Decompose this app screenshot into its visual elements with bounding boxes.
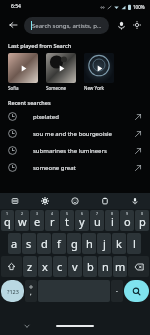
- button[interactable]: s: [22, 233, 36, 254]
- button[interactable]: 6: [75, 210, 89, 231]
- staticText: p: [139, 214, 146, 229]
- button[interactable]: a: [8, 233, 21, 254]
- staticText: y: [79, 214, 85, 229]
- staticText: pixelated: [33, 113, 134, 121]
- button[interactable]: h: [82, 233, 96, 254]
- button[interactable]: New York Groove: [84, 53, 114, 91]
- staticText: sou me and the bourgeoisie: [33, 130, 134, 138]
- button[interactable]: Clipboard: [90, 193, 120, 209]
- button[interactable]: Comma: [25, 280, 37, 302]
- button[interactable]: Voice search: [113, 17, 129, 33]
- button[interactable]: g: [67, 233, 81, 254]
- button[interactable]: Voice input: [120, 193, 150, 209]
- button[interactable]: d: [37, 233, 51, 254]
- button[interactable]: 3: [30, 210, 44, 231]
- button[interactable]: submarines the lumineers: [0, 142, 150, 159]
- button[interactable]: Search songs, artists, po…: [24, 17, 109, 34]
- button[interactable]: Backspace: [128, 256, 149, 277]
- staticText: r: [50, 214, 55, 229]
- button[interactable]: 7: [90, 210, 104, 231]
- staticText: Last played from Search: [8, 42, 72, 49]
- button[interactable]: Settings: [30, 193, 60, 209]
- staticText: n: [102, 259, 109, 274]
- staticText: x: [42, 259, 48, 274]
- button[interactable]: v: [68, 256, 82, 277]
- button[interactable]: j: [97, 233, 111, 254]
- staticText: 1: [6, 211, 9, 216]
- button[interactable]: 4: [45, 210, 59, 231]
- staticText: c: [57, 259, 63, 274]
- staticText: ,: [30, 289, 32, 297]
- staticText: 3: [36, 211, 39, 216]
- button[interactable]: Emoji: [60, 193, 90, 209]
- button[interactable]: Keyboard layouts: [0, 193, 30, 209]
- button[interactable]: 8: [105, 210, 119, 231]
- button[interactable]: Camera search: [129, 17, 145, 33]
- button[interactable]: Sofia: [8, 53, 38, 91]
- staticText: 5: [66, 211, 69, 216]
- staticText: ?123: [7, 288, 19, 295]
- staticText: z: [27, 259, 33, 274]
- staticText: 6:54: [11, 3, 21, 10]
- button[interactable]: z: [23, 256, 37, 277]
- button[interactable]: m: [113, 256, 127, 277]
- staticText: u: [94, 214, 101, 229]
- staticText: submarines the lumineers: [33, 147, 134, 155]
- staticText: someone great: [33, 164, 134, 172]
- staticText: s: [26, 236, 32, 251]
- staticText: Recent searches: [8, 99, 51, 106]
- button[interactable]: ?123: [1, 280, 24, 302]
- button[interactable]: 5: [60, 210, 74, 231]
- button[interactable]: f: [52, 233, 66, 254]
- staticText: 9: [126, 211, 129, 216]
- button[interactable]: pixelated: [0, 108, 150, 125]
- staticText: q: [4, 214, 11, 229]
- staticText: Search songs, artists, po…: [32, 22, 102, 30]
- button[interactable]: b: [83, 256, 97, 277]
- staticText: 4: [51, 211, 54, 216]
- button[interactable]: 0: [135, 210, 149, 231]
- staticText: d: [41, 236, 48, 251]
- button[interactable]: Back: [5, 17, 21, 33]
- staticText: m: [115, 259, 126, 274]
- button[interactable]: Shift: [1, 256, 22, 277]
- staticText: b: [87, 259, 94, 274]
- staticText: 8: [111, 211, 114, 216]
- button[interactable]: someone great: [0, 159, 150, 176]
- button[interactable]: x: [38, 256, 52, 277]
- staticText: t: [65, 214, 69, 229]
- staticText: e: [34, 214, 41, 229]
- button[interactable]: 2: [15, 210, 29, 231]
- staticText: h: [86, 236, 93, 251]
- staticText: 0: [141, 211, 144, 216]
- staticText: 100%: [133, 4, 145, 10]
- button[interactable]: n: [98, 256, 112, 277]
- button[interactable]: Period: [111, 280, 123, 302]
- button[interactable]: 9: [120, 210, 134, 231]
- button[interactable]: Someone Great: [46, 53, 76, 91]
- staticText: 2: [21, 211, 24, 216]
- button[interactable]: l: [127, 233, 141, 254]
- staticText: .: [116, 285, 118, 295]
- button[interactable]: Hide keyboard: [22, 321, 32, 331]
- staticText: f: [57, 236, 61, 251]
- button[interactable]: k: [112, 233, 126, 254]
- staticText: v: [72, 259, 78, 274]
- staticText: New York Groove: [84, 85, 114, 91]
- staticText: 7: [96, 211, 99, 216]
- staticText: Sofia: [8, 85, 19, 91]
- button[interactable]: 1: [1, 210, 14, 231]
- staticText: w: [18, 214, 27, 229]
- button[interactable]: Search: [124, 280, 149, 302]
- staticText: k: [116, 236, 122, 251]
- staticText: i: [111, 214, 114, 229]
- staticText: a: [11, 236, 18, 251]
- button[interactable]: sou me and the bourgeoisie: [0, 125, 150, 142]
- staticText: j: [103, 236, 106, 251]
- staticText: o: [124, 214, 131, 229]
- staticText: l: [133, 236, 136, 251]
- button[interactable]: c: [53, 256, 67, 277]
- staticText: g: [71, 236, 78, 251]
- staticText: 6: [81, 211, 84, 216]
